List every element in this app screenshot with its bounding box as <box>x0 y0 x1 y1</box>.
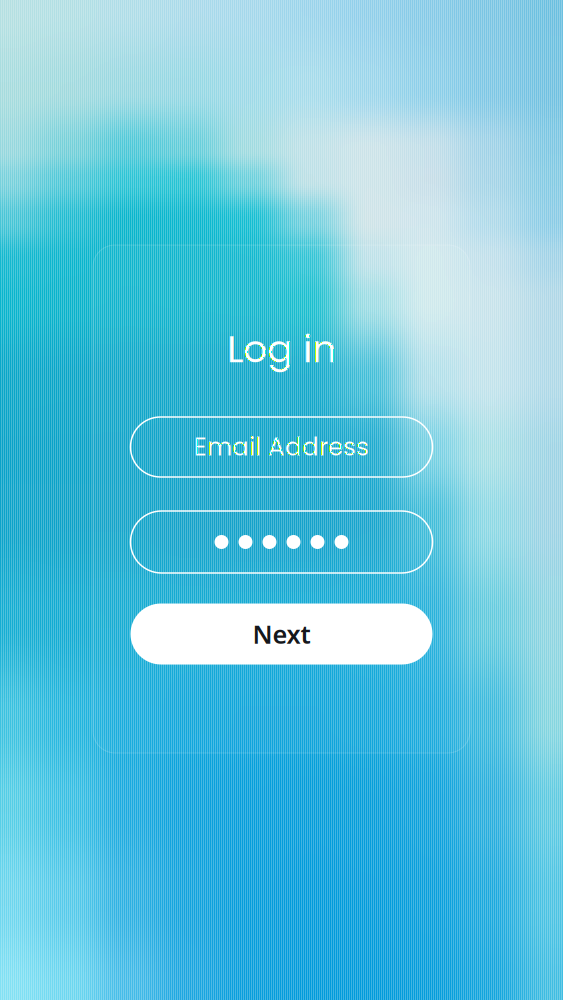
staticText: Log in <box>227 322 336 376</box>
staticText: Next <box>252 617 310 651</box>
button[interactable] <box>130 511 432 573</box>
button[interactable]: Next <box>130 603 432 664</box>
button[interactable]: Email Address <box>130 417 432 477</box>
staticText: Email Address <box>194 430 369 464</box>
